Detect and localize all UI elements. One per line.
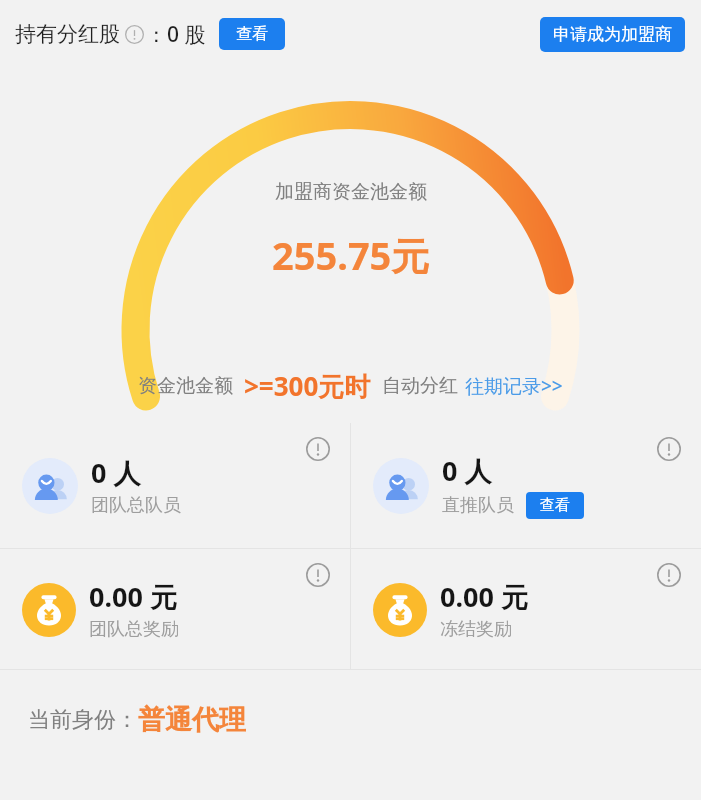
button[interactable]: 0 人 <box>0 423 350 548</box>
staticText: 0.00 元 <box>89 578 177 615</box>
staticText: ：0 股 <box>146 20 206 49</box>
staticText: 查看 <box>236 24 268 44</box>
button[interactable]: 0 人 <box>351 423 701 548</box>
button[interactable]: 说明 <box>657 563 681 587</box>
button[interactable]: 0.00 元 <box>0 549 350 669</box>
staticText: 自动分红 <box>382 374 458 398</box>
button[interactable]: 0.00 元 <box>351 549 701 669</box>
staticText: 申请成为加盟商 <box>553 24 672 45</box>
button[interactable]: 说明 <box>306 563 330 587</box>
staticText: >=300元时 <box>244 368 371 404</box>
staticText: 0 人 <box>442 452 492 489</box>
button[interactable]: 说明 <box>306 437 330 461</box>
staticText: 团队总奖励 <box>89 618 179 641</box>
staticText: 往期记录>> <box>465 373 563 399</box>
button[interactable]: 申请成为加盟商 <box>540 17 685 52</box>
staticText: 资金池金额 <box>138 374 233 398</box>
button[interactable]: 查看 <box>219 18 285 50</box>
button[interactable]: 查看 <box>526 492 584 519</box>
staticText: 255.75元 <box>272 229 430 281</box>
staticText: 持有分红股 <box>15 21 120 47</box>
staticText: 0.00 元 <box>440 578 528 615</box>
staticText: 直推队员 <box>442 494 514 517</box>
staticText: 普通代理 <box>138 703 246 737</box>
staticText: 查看 <box>540 496 570 515</box>
button[interactable]: 说明 <box>657 437 681 461</box>
button[interactable]: 往期记录>> <box>465 373 563 399</box>
staticText: 加盟商资金池金额 <box>275 180 427 204</box>
staticText: 冻结奖励 <box>440 618 512 641</box>
staticText: 当前身份： <box>28 706 138 734</box>
staticText: 团队总队员 <box>91 494 181 517</box>
staticText: 0 人 <box>91 454 141 491</box>
